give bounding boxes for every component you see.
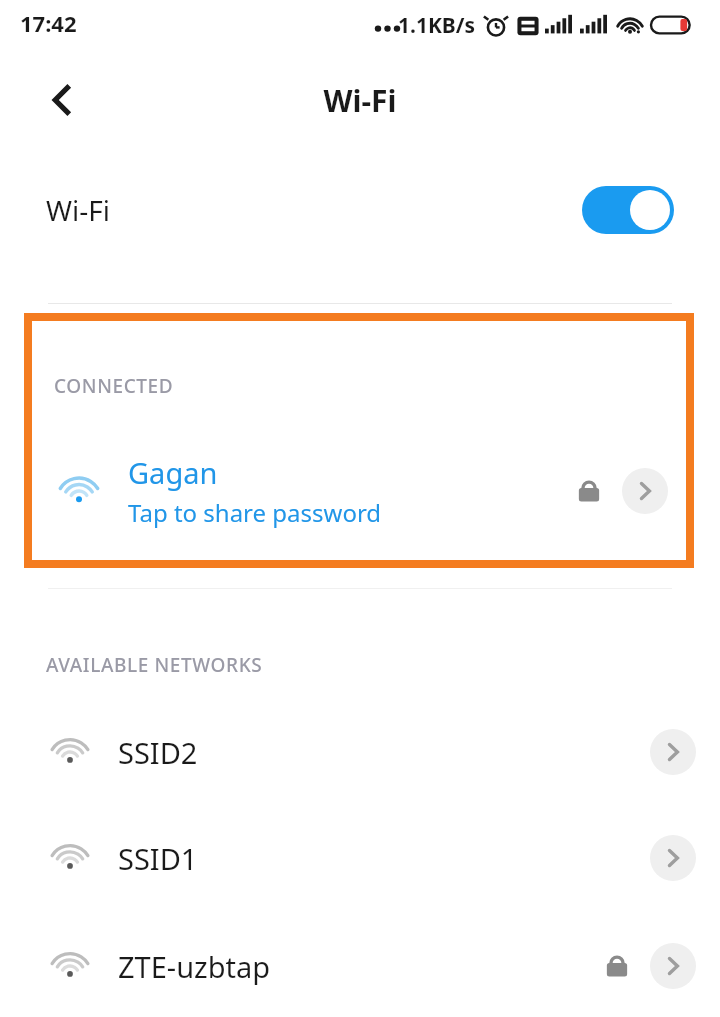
staticText: Tap to share password [128,496,382,529]
staticText: ZTE-uzbtap [118,947,271,986]
button[interactable]: Gagan [32,441,686,541]
staticText: AVAILABLE NETWORKS [46,652,263,678]
button[interactable]: SSID1 [0,810,720,906]
staticText: Gagan [128,453,218,492]
staticText: Wi-Fi [46,191,111,229]
button[interactable]: SSID2 [0,704,720,800]
button[interactable]: CONNECTED [32,321,686,560]
button[interactable]: ZTE-uzbtap [0,918,720,1014]
staticText: Wi-Fi [0,80,720,121]
staticText: SSID2 [118,733,198,772]
button[interactable]: Wi-Fi [0,165,720,255]
staticText: SSID1 [118,839,198,878]
staticText: CONNECTED [54,373,174,399]
staticText: 1.1KB/s [398,11,476,40]
staticText: 17:42 [20,8,77,38]
button[interactable]: Back [26,64,98,136]
